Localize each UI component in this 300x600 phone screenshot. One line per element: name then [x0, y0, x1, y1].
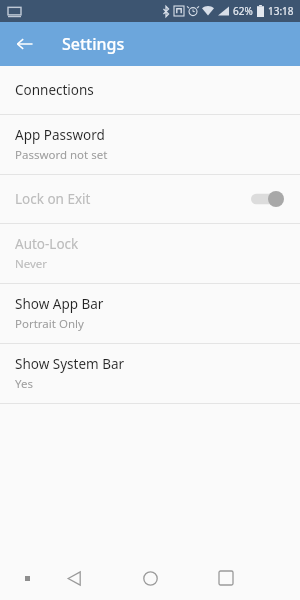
staticText: Settings — [62, 33, 125, 55]
button[interactable]: App Password — [0, 115, 300, 174]
staticText: 13:18 — [268, 4, 294, 18]
staticText: Yes — [15, 376, 33, 392]
button[interactable]: Connections — [0, 66, 300, 114]
button[interactable]: Lock on Exit toggle — [251, 189, 285, 209]
staticText: Connections — [15, 81, 94, 99]
staticText: Show App Bar — [15, 295, 104, 313]
button[interactable]: Auto-Lock — [0, 224, 300, 283]
button[interactable]: Home — [135, 563, 165, 593]
staticText: App Password — [15, 126, 105, 144]
button[interactable]: Recent apps — [211, 563, 241, 593]
button[interactable]: Show System Bar — [0, 344, 300, 403]
button[interactable]: Lock on Exit — [0, 175, 300, 223]
button[interactable]: Back — [59, 563, 89, 593]
button[interactable]: Hide navigation bar — [14, 565, 40, 591]
button[interactable]: Show App Bar — [0, 284, 300, 343]
button[interactable]: Back — [9, 28, 41, 60]
staticText: Password not set — [15, 147, 108, 163]
staticText: Lock on Exit — [15, 190, 91, 208]
staticText: 62% — [233, 4, 253, 18]
staticText: Portrait Only — [15, 316, 84, 332]
staticText: Show System Bar — [15, 355, 125, 373]
staticText: Auto-Lock — [15, 235, 79, 253]
staticText: Never — [15, 256, 48, 272]
